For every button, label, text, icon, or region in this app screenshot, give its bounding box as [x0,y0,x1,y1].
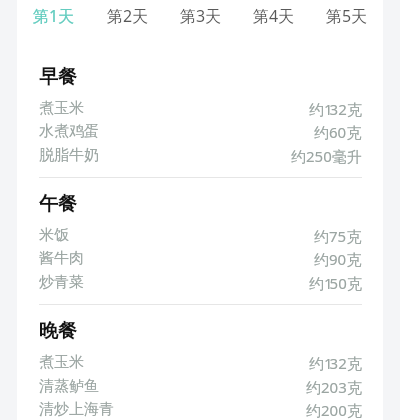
button[interactable]: 清炒上海青 [17,400,383,420]
staticText: 第1天 [33,5,75,27]
button[interactable]: 晚餐 [39,319,362,345]
button[interactable]: 第1天 [17,0,91,31]
button[interactable]: 第2天 [91,0,164,31]
staticText: 约250毫升 [291,146,362,166]
staticText: 约150克 [309,273,362,293]
button[interactable]: 清蒸鲈鱼 [17,377,383,401]
button[interactable]: 煮玉米 [17,99,383,123]
staticText: 清炒上海青 [39,400,114,419]
staticText: 约132克 [309,99,362,119]
staticText: 清蒸鲈鱼 [39,377,99,396]
staticText: 炒青菜 [39,273,84,292]
button[interactable]: 米饭 [17,226,383,250]
staticText: 酱牛肉 [39,249,84,268]
button[interactable]: 炒青菜 [17,273,383,297]
staticText: 约203克 [306,377,362,397]
button[interactable]: 午餐 [39,192,362,218]
staticText: 约60克 [314,122,362,142]
staticText: 米饭 [39,226,69,245]
button[interactable]: 脱脂牛奶 [17,146,383,170]
button[interactable]: 早餐 [39,65,362,91]
staticText: 约200克 [306,400,362,420]
staticText: 晚餐 [39,319,77,343]
staticText: 第4天 [253,5,295,27]
button[interactable]: 第5天 [310,0,383,31]
staticText: 脱脂牛奶 [39,146,99,165]
button[interactable]: 水煮鸡蛋 [17,122,383,146]
staticText: 煮玉米 [39,353,84,372]
staticText: 煮玉米 [39,99,84,118]
staticText: 约90克 [314,249,362,269]
button[interactable]: 酱牛肉 [17,249,383,273]
staticText: 第2天 [107,5,149,27]
staticText: 约75克 [314,226,362,246]
staticText: 第3天 [180,5,222,27]
staticText: 午餐 [39,192,77,216]
staticText: 第5天 [326,5,368,27]
button[interactable]: 煮玉米 [17,353,383,377]
staticText: 水煮鸡蛋 [39,122,99,141]
staticText: 早餐 [39,65,77,89]
staticText: 约132克 [309,353,362,373]
button[interactable]: 第4天 [237,0,310,31]
button[interactable]: 第3天 [164,0,237,31]
